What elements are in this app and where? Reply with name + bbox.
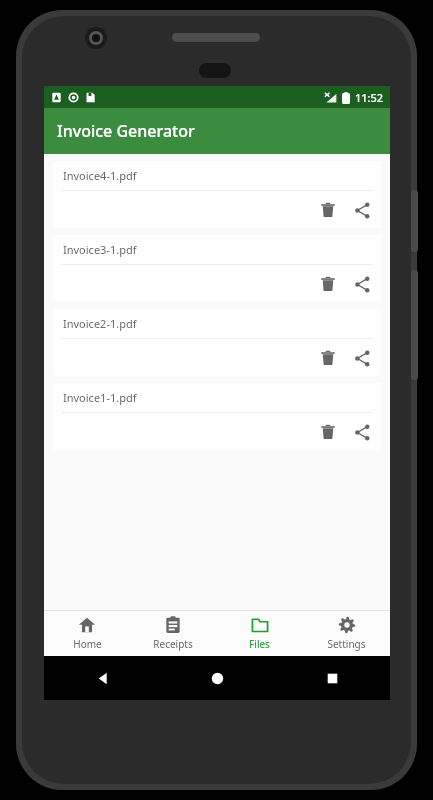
button[interactable]: Delete [311, 341, 345, 375]
staticText: Invoice2-1.pdf [63, 316, 137, 331]
staticText: Settings [327, 637, 366, 651]
button[interactable]: Home [160, 656, 275, 700]
button[interactable]: Settings [303, 611, 390, 656]
staticText: Files [249, 637, 270, 651]
button[interactable]: Delete [311, 193, 345, 227]
staticText: Invoice4-1.pdf [63, 168, 137, 183]
staticText: Invoice1-1.pdf [63, 390, 137, 405]
staticText: Receipts [153, 637, 193, 651]
staticText: Home [73, 637, 102, 651]
button[interactable]: Delete [311, 415, 345, 449]
button[interactable]: Share [347, 341, 377, 375]
button[interactable]: Home [44, 611, 130, 656]
staticText: 11:52 [355, 90, 384, 105]
button[interactable]: Share [347, 267, 377, 301]
button[interactable]: Share [347, 415, 377, 449]
button[interactable]: Recent apps [275, 656, 390, 700]
button[interactable]: Delete [311, 267, 345, 301]
button[interactable]: Invoice1-1.pdf [53, 383, 381, 450]
button[interactable]: Invoice2-1.pdf [53, 309, 381, 376]
staticText: Invoice3-1.pdf [63, 242, 137, 257]
button[interactable]: Invoice4-1.pdf [53, 161, 381, 228]
button[interactable]: Back [44, 656, 160, 700]
button[interactable]: Share [347, 193, 377, 227]
staticText: Invoice Generator [57, 120, 195, 142]
button[interactable]: Receipts [130, 611, 216, 656]
button[interactable]: Invoice3-1.pdf [53, 235, 381, 302]
button[interactable]: Files [216, 611, 303, 656]
